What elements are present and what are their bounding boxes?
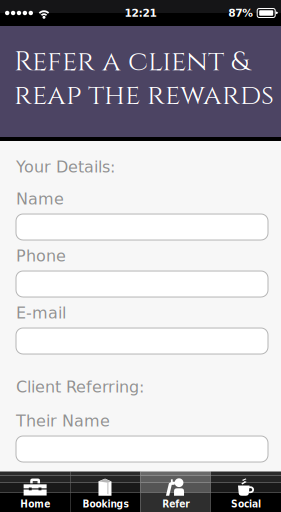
button[interactable] xyxy=(16,214,268,240)
staticText: Your Details: xyxy=(16,158,115,176)
staticText: Phone xyxy=(16,247,66,265)
button[interactable]: Refer xyxy=(140,473,211,512)
button[interactable] xyxy=(16,271,268,297)
button[interactable]: Bookings xyxy=(70,473,140,512)
staticText: Their Name xyxy=(16,412,110,430)
staticText: Name xyxy=(16,190,64,208)
staticText: E-mail xyxy=(16,304,66,322)
staticText: Client Referring: xyxy=(16,378,144,396)
staticText: Social xyxy=(231,498,261,510)
staticText: Refer a client & xyxy=(14,43,249,81)
staticText: reap the rewards xyxy=(14,77,274,114)
button[interactable] xyxy=(16,328,268,354)
button[interactable] xyxy=(16,436,268,462)
staticText: Home xyxy=(20,498,50,510)
staticText: Refer xyxy=(162,498,189,510)
staticText: Bookings xyxy=(82,498,128,510)
button[interactable]: Home xyxy=(0,473,70,512)
staticText: 12:21 xyxy=(124,7,156,19)
button[interactable]: Social xyxy=(211,473,281,512)
staticText: 87% xyxy=(228,7,253,19)
